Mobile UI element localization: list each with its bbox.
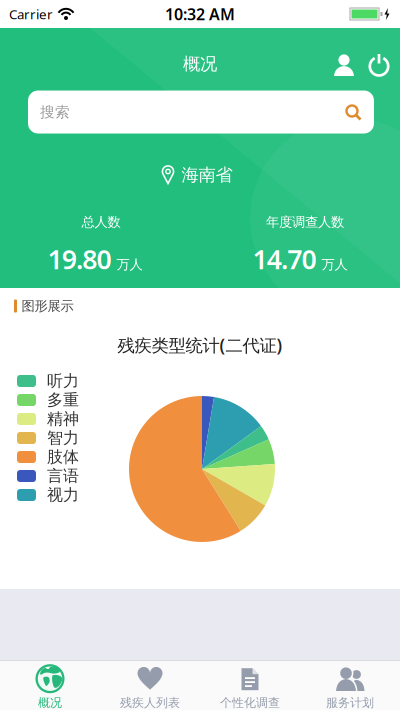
staticText: 肢体 xyxy=(47,447,79,467)
staticText: 19.80 xyxy=(48,241,111,277)
staticText: 年度调查人数 xyxy=(266,214,344,230)
staticText: 万人 xyxy=(116,256,142,273)
staticText: 海南省 xyxy=(181,164,232,186)
staticText: 残疾人列表 xyxy=(120,695,180,710)
staticText: 搜索 xyxy=(40,103,70,121)
button[interactable]: 搜索 xyxy=(28,90,374,133)
staticText: 言语 xyxy=(47,466,79,486)
button[interactable]: 概况 xyxy=(0,661,100,710)
staticText: 残疾类型统计(二代证) xyxy=(117,333,282,356)
staticText: 听力 xyxy=(47,371,79,391)
button[interactable]: 服务计划 xyxy=(300,661,400,710)
staticText: 服务计划 xyxy=(326,695,374,710)
button[interactable]: 用户 xyxy=(328,49,360,81)
button[interactable]: 退出 xyxy=(362,48,395,81)
staticText: 图形展示 xyxy=(21,298,73,314)
staticText: 14.70 xyxy=(253,241,316,277)
staticText: 10:32 AM xyxy=(165,3,235,25)
staticText: Carrier xyxy=(9,5,53,23)
button[interactable]: 海南省 xyxy=(161,164,232,186)
staticText: 视力 xyxy=(47,485,79,505)
button[interactable]: 残疾人列表 xyxy=(100,661,200,710)
staticText: 多重 xyxy=(47,390,79,410)
staticText: 智力 xyxy=(47,428,79,448)
staticText: 万人 xyxy=(321,256,347,273)
button[interactable]: 个性化调查 xyxy=(200,661,300,710)
staticText: 精神 xyxy=(47,409,79,429)
staticText: 概况 xyxy=(38,695,62,710)
staticText: 概况 xyxy=(183,53,217,75)
staticText: 个性化调查 xyxy=(220,695,280,710)
staticText: 总人数 xyxy=(81,214,120,230)
